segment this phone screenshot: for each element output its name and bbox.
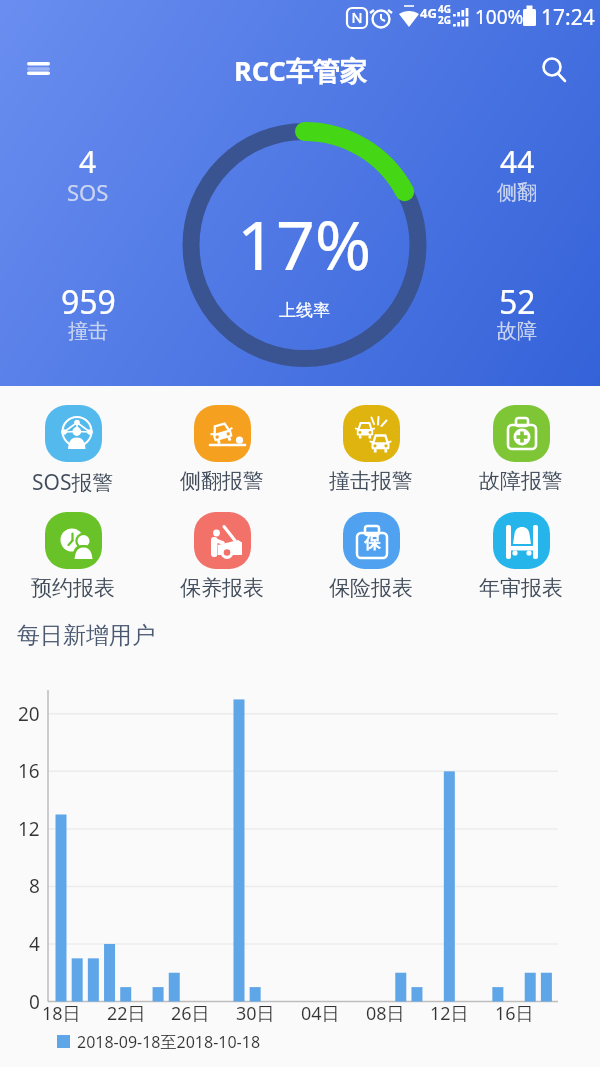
staticText: 17% [237,197,372,290]
staticText: 26日 [171,1001,210,1026]
button[interactable]: 保 [296,512,446,601]
staticText: 100% [475,4,524,30]
staticText: 每日新增用户 [17,621,155,650]
staticText: 0 [29,989,40,1015]
staticText: 16 [18,758,40,784]
staticText: 22日 [107,1001,146,1026]
button[interactable] [534,49,574,89]
staticText: 撞击 [68,319,108,344]
button[interactable]: 撞击报警 [296,405,446,494]
staticText: 预约报表 [31,575,115,601]
staticText: 16日 [495,1001,534,1026]
staticText: 保养报表 [180,575,264,601]
staticText: 2018-09-18至2018-10-18 [77,1031,261,1053]
staticText: 年审报表 [479,575,563,601]
staticText: 12日 [430,1001,469,1026]
staticText: 上线率 [279,300,330,321]
staticText: 30日 [236,1001,275,1026]
staticText: 侧翻 [497,180,537,205]
staticText: 4G [438,2,451,16]
staticText: 20 [18,701,40,727]
staticText: 撞击报警 [329,468,413,494]
button[interactable]: SOS报警 [0,405,148,497]
staticText: 8 [29,873,40,899]
staticText: 18日 [42,1001,81,1026]
staticText: 侧翻报警 [180,468,264,494]
staticText: 959 [61,280,116,324]
staticText: 保 [364,533,380,553]
button[interactable]: 年审报表 [446,512,596,601]
staticText: 4 [79,141,97,182]
staticText: SOS [67,177,109,207]
staticText: 保险报表 [329,575,413,601]
staticText: 44 [500,141,535,182]
staticText: 故障 [497,319,537,344]
staticText: 04日 [301,1001,340,1026]
staticText: 故障报警 [479,468,563,494]
button[interactable]: 保养报表 [147,512,297,601]
staticText: 2G [438,13,451,27]
button[interactable]: 故障报警 [446,405,596,494]
staticText: 17:24 [541,3,595,32]
staticText: 4G [420,4,437,22]
staticText: RCC车管家 [234,52,367,89]
staticText: 08日 [366,1001,405,1026]
staticText: SOS报警 [32,468,114,497]
staticText: 52 [499,280,536,324]
button[interactable]: 预约报表 [0,512,148,601]
button[interactable] [17,52,61,96]
staticText: 4 [29,931,40,957]
staticText: 12 [18,816,40,842]
button[interactable]: 侧翻报警 [147,405,297,494]
